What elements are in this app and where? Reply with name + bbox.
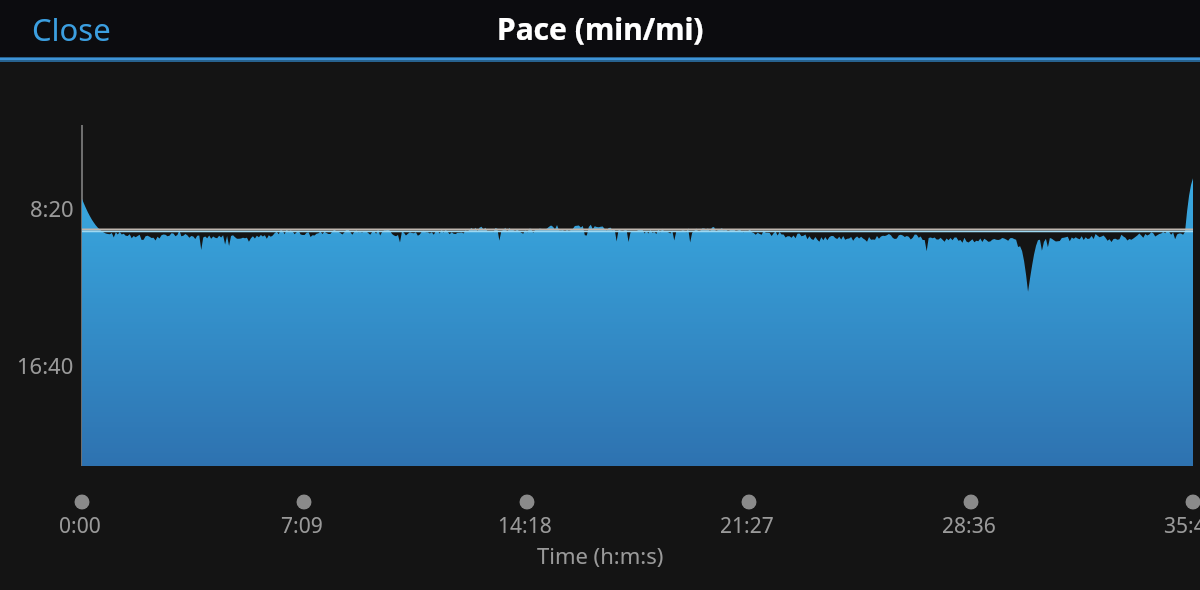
staticText: 0:00 xyxy=(59,511,101,540)
button[interactable]: Close xyxy=(24,2,119,56)
staticText: 21:27 xyxy=(720,511,774,540)
staticText: 8:20 xyxy=(30,193,74,223)
staticText: 16:40 xyxy=(17,350,74,380)
staticText: 7:09 xyxy=(281,511,323,540)
staticText: Close xyxy=(32,8,111,50)
staticText: 28:36 xyxy=(942,511,996,540)
staticText: Time (h:m:s) xyxy=(537,540,664,570)
staticText: 35:45 xyxy=(1164,511,1200,540)
staticText: Pace (min/mi) xyxy=(497,8,704,49)
staticText: 14:18 xyxy=(498,511,552,540)
